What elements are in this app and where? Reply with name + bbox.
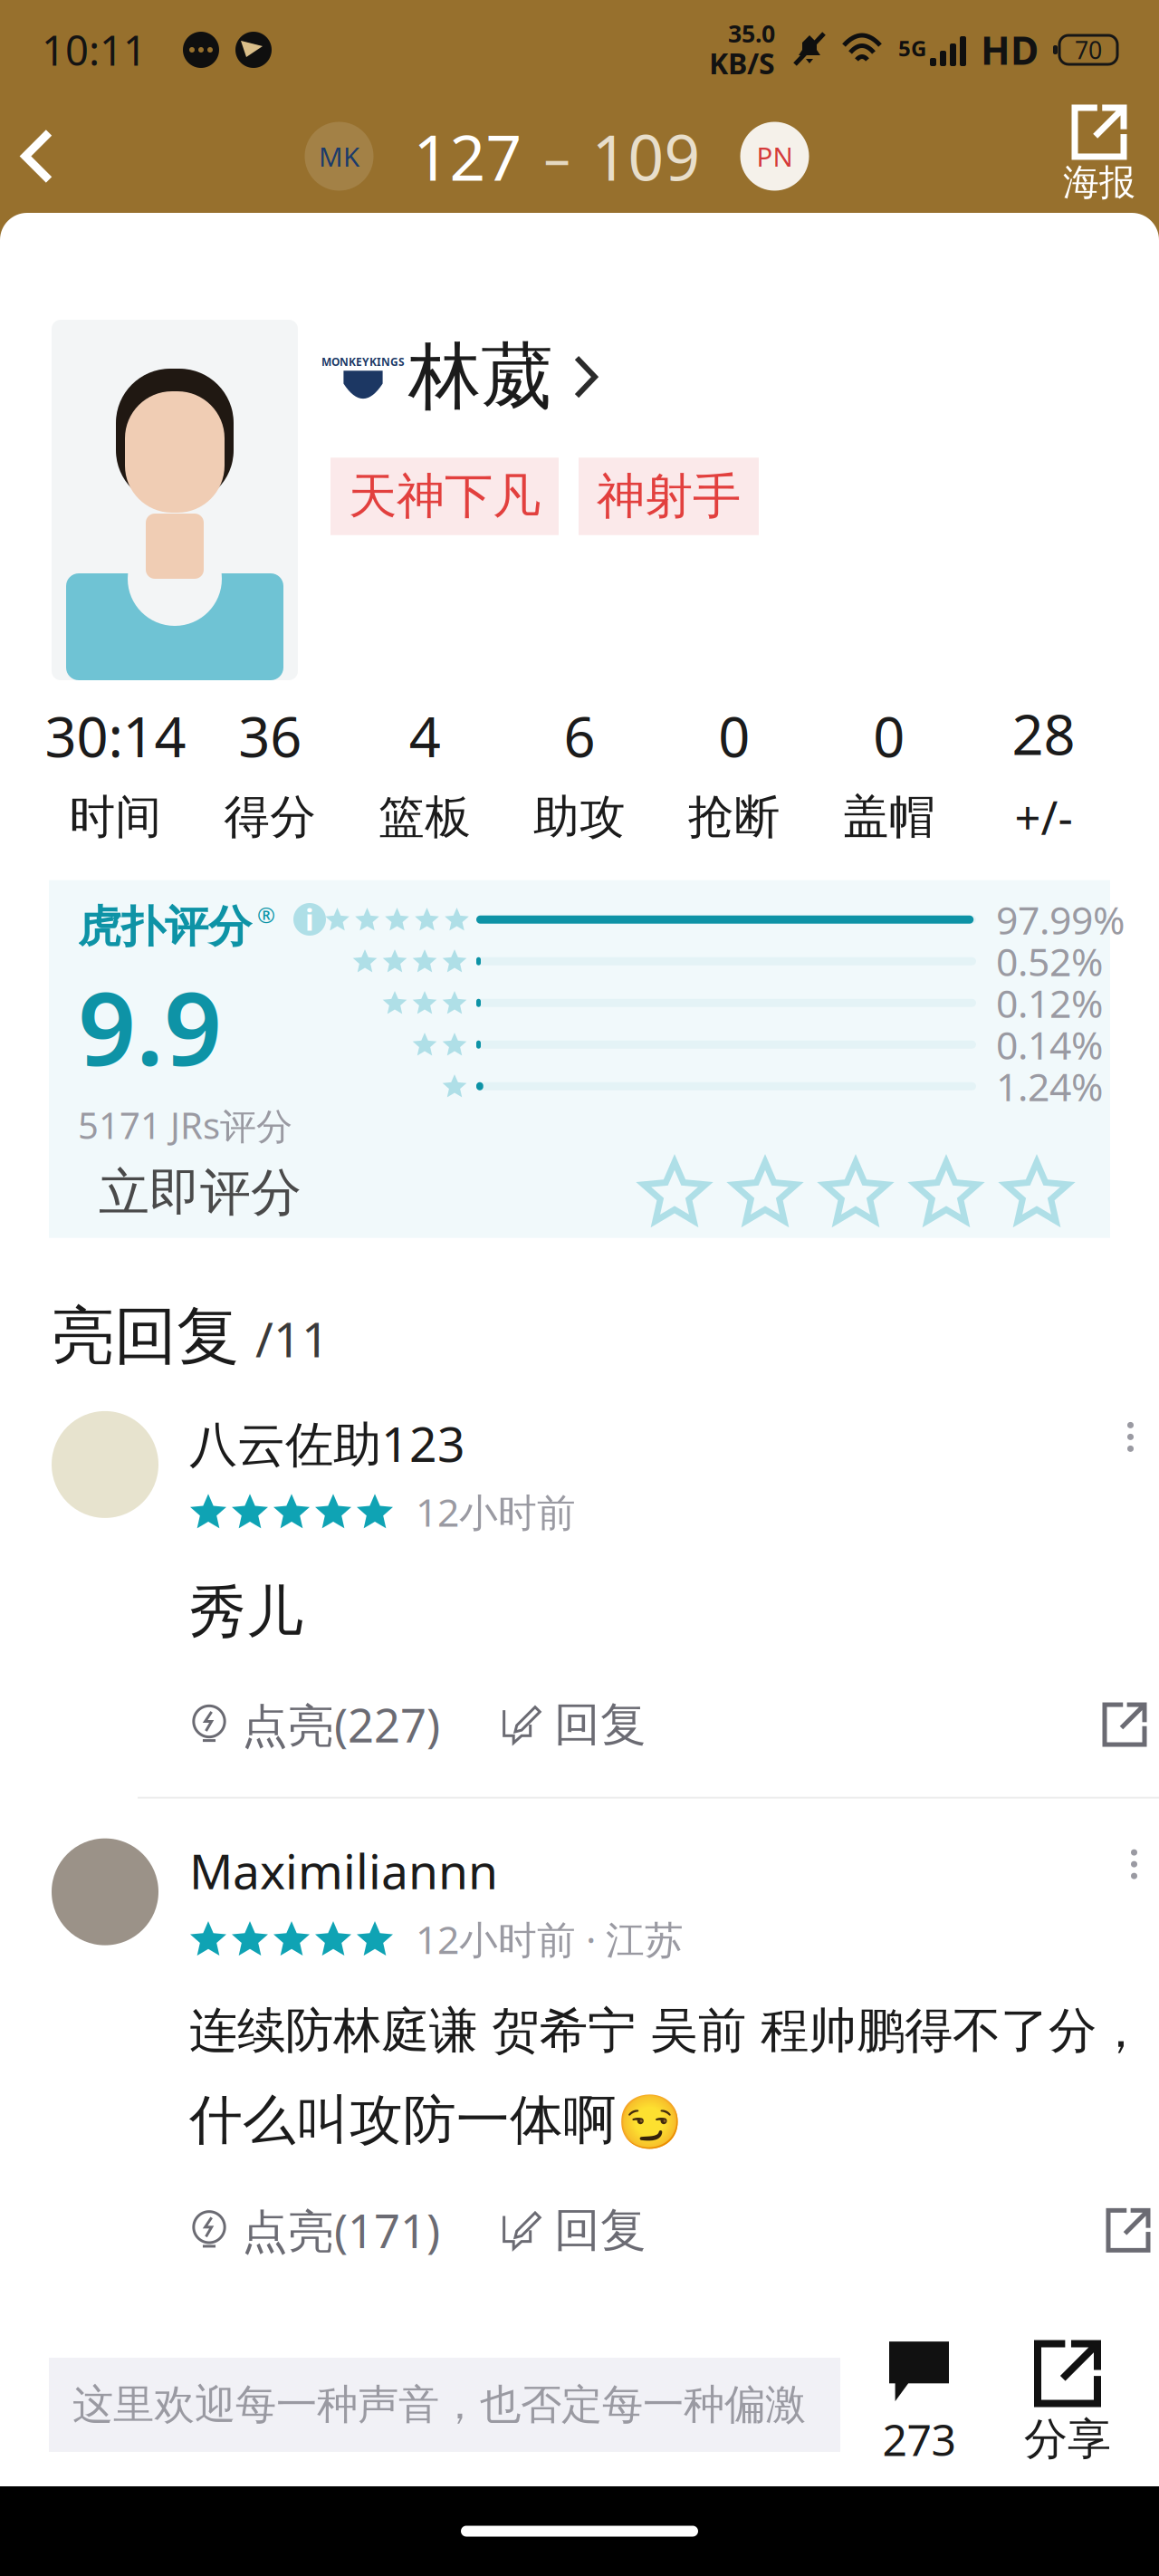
staticText: PN xyxy=(757,139,793,174)
staticText: 6 xyxy=(564,699,595,773)
button[interactable]: More xyxy=(1116,1411,1145,1463)
staticText: 0 xyxy=(873,699,905,773)
button[interactable]: Back xyxy=(0,102,74,211)
button[interactable]: 海报 xyxy=(1039,93,1159,220)
staticText: 这里欢迎每一种声音，也否定每一种偏激 xyxy=(72,2380,806,2430)
staticText: 盖帽 xyxy=(843,789,935,845)
staticText: 秀儿 xyxy=(189,1577,303,1647)
staticText: 分享 xyxy=(1024,2413,1111,2466)
staticText: /11 xyxy=(255,1306,330,1371)
staticText: MONKEYKINGS xyxy=(321,354,405,369)
staticText: 0.14% xyxy=(996,1019,1103,1070)
button[interactable]: Rate 1 star xyxy=(642,1160,707,1225)
staticText: 点亮(171) xyxy=(242,2200,440,2261)
staticText: 助攻 xyxy=(533,789,626,845)
staticText: 得分 xyxy=(224,789,316,845)
staticText: MK xyxy=(319,139,359,174)
staticText: 30:14 xyxy=(45,699,186,773)
staticText: 0.12% xyxy=(996,977,1103,1029)
staticText: 抢断 xyxy=(688,789,780,845)
staticText: 亮回复 xyxy=(52,1298,239,1375)
staticText: 回复 xyxy=(554,2202,647,2258)
button[interactable]: 这里欢迎每一种声音，也否定每一种偏激 xyxy=(49,2358,840,2452)
staticText: 4 xyxy=(409,699,441,773)
staticText: – xyxy=(544,121,570,191)
staticText: 12小时前 xyxy=(416,1486,576,1537)
staticText: 点亮(227) xyxy=(242,1694,440,1755)
staticText: 虎扑评分 xyxy=(78,900,252,954)
staticText: 5G xyxy=(898,34,926,62)
staticText: 篮板 xyxy=(379,789,471,845)
button[interactable]: Rate 2 stars xyxy=(733,1160,798,1225)
staticText: KB/S xyxy=(709,44,775,82)
staticText: +/- xyxy=(1015,787,1073,848)
button[interactable]: MONKEYKINGS xyxy=(330,332,779,421)
staticText: 127 xyxy=(413,115,522,198)
staticText: 海报 xyxy=(1063,160,1135,205)
staticText: i xyxy=(305,900,314,939)
staticText: 109 xyxy=(592,115,700,198)
button[interactable]: 点亮(171) xyxy=(189,2200,440,2261)
staticText: 9.9 xyxy=(78,959,222,1094)
button[interactable]: 回复 xyxy=(502,1696,647,1753)
button[interactable]: 273 xyxy=(860,2341,978,2468)
staticText: 0.52% xyxy=(996,936,1103,987)
staticText: 什么叫攻防一体啊😏 xyxy=(189,2087,683,2153)
button[interactable]: 立即评分 xyxy=(99,1162,327,1224)
button[interactable]: Share xyxy=(1105,1705,1145,1745)
button[interactable]: Rate 5 stars xyxy=(1004,1160,1069,1225)
button[interactable]: 分享 xyxy=(1009,2344,1126,2466)
staticText: 回复 xyxy=(554,1696,647,1753)
button[interactable]: More xyxy=(1120,1838,1148,1890)
button[interactable]: Player photo xyxy=(52,320,298,680)
staticText: 28 xyxy=(1012,697,1075,770)
button[interactable]: Share xyxy=(1108,2210,1148,2250)
staticText: 林葳 xyxy=(408,332,553,421)
button[interactable]: 回复 xyxy=(502,2202,647,2258)
staticText: Maximiliannn xyxy=(189,1838,498,1902)
staticText: 时间 xyxy=(69,789,162,845)
button[interactable]: 神射手 xyxy=(579,458,759,535)
button[interactable]: Rating info xyxy=(293,900,326,939)
staticText: ® xyxy=(257,900,275,929)
staticText: 273 xyxy=(882,2410,956,2468)
staticText: 0 xyxy=(718,699,750,773)
staticText: 97.99% xyxy=(996,894,1125,945)
staticText: 八云佐助123 xyxy=(189,1411,465,1475)
button[interactable]: 点亮(227) xyxy=(189,1694,440,1755)
staticText: 神射手 xyxy=(597,467,741,526)
staticText: 10:11 xyxy=(42,23,147,77)
staticText: HD xyxy=(981,24,1039,76)
staticText: 5171 JRs评分 xyxy=(78,1101,292,1149)
button[interactable]: Rate 3 stars xyxy=(823,1160,888,1225)
staticText: 1.24% xyxy=(996,1061,1103,1112)
staticText: 35.0 xyxy=(728,17,775,49)
staticText: 36 xyxy=(238,699,302,773)
staticText: 12小时前 · 江苏 xyxy=(416,1913,684,1965)
staticText: 立即评分 xyxy=(99,1162,302,1224)
button[interactable]: Rate 4 stars xyxy=(914,1160,979,1225)
staticText: 连续防林庭谦 贺希宁 吴前 程帅鹏得不了分， xyxy=(189,2001,1145,2060)
button[interactable]: 天神下凡 xyxy=(330,458,559,535)
staticText: 70 xyxy=(1075,34,1102,66)
staticText: 天神下凡 xyxy=(349,467,541,526)
